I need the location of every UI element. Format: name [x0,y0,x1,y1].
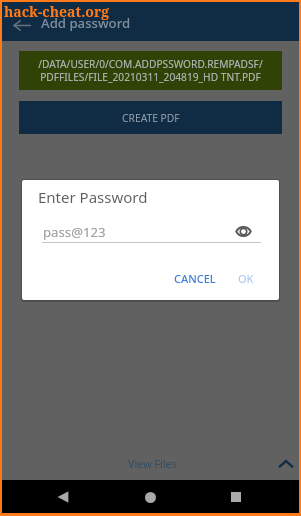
staticText: CANCEL [174,271,216,286]
button[interactable]: View Files [2,452,299,480]
staticText: /DATA/USER/0/COM.ADDPSSWORD.REMPADSF/ PD… [38,57,263,84]
button[interactable]: Back [9,13,35,39]
staticText: OK [238,271,254,286]
staticText: Add password [41,14,131,32]
button[interactable]: CANCEL [166,265,224,292]
staticText: hack-cheat.org [4,2,110,21]
button[interactable]: Home [135,482,165,512]
staticText: pass@123 [43,223,106,241]
staticText: CREATE PDF [122,111,180,125]
button[interactable]: Back [48,482,78,512]
button[interactable]: OK [230,265,262,292]
button[interactable]: Show password [233,221,253,241]
button[interactable]: Recents [221,482,251,512]
button[interactable]: Collapse [274,452,298,476]
button[interactable]: CREATE PDF [19,101,282,134]
staticText: View Files [128,456,177,471]
staticText: Enter Password [38,187,148,207]
